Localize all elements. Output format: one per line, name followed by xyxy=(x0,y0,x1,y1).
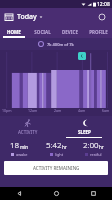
staticText: light xyxy=(55,152,64,157)
button[interactable]: Profile xyxy=(97,12,107,22)
staticText: ACTIVITY REMAINING xyxy=(33,165,80,171)
button[interactable]: Calendar xyxy=(5,12,43,22)
button[interactable]: 2:00 xyxy=(75,138,112,158)
staticText: 12:08 xyxy=(97,1,110,8)
staticText: PROFILE xyxy=(89,29,108,35)
button[interactable]: 18 xyxy=(0,138,38,158)
button[interactable]: Sleep marker xyxy=(78,52,86,60)
staticText: 4am xyxy=(78,108,86,113)
staticText: 7k 400m of 7k xyxy=(47,42,74,47)
staticText: min xyxy=(20,144,29,150)
button[interactable]: DEVICE xyxy=(56,25,84,38)
button[interactable]: Recents xyxy=(75,187,112,200)
staticText: restful xyxy=(90,152,102,157)
staticText: ACTIVITY xyxy=(18,129,38,135)
staticText: 10pm xyxy=(2,108,12,113)
staticText: awake xyxy=(16,152,28,157)
staticText: 6am xyxy=(102,108,110,113)
button[interactable]: 5:42 xyxy=(38,138,75,158)
staticText: 12am xyxy=(28,108,38,113)
button[interactable]: Back xyxy=(0,187,38,200)
button[interactable]: ACTIVITY xyxy=(0,116,56,138)
other: Calendar xyxy=(5,13,13,21)
staticText: SLEEP xyxy=(78,129,91,135)
button[interactable]: SOCIAL xyxy=(28,25,56,38)
button[interactable]: ACTIVITY REMAINING xyxy=(4,161,108,175)
button[interactable]: HOME xyxy=(0,25,28,38)
staticText: 2:00 xyxy=(83,139,99,150)
staticText: hr xyxy=(99,144,104,150)
staticText: DEVICE xyxy=(62,29,78,35)
button[interactable]: SLEEP xyxy=(56,116,112,138)
staticText: SOCIAL xyxy=(34,29,51,35)
button[interactable]: PROFILE xyxy=(84,25,112,38)
staticText: hr xyxy=(62,144,67,150)
staticText: Today xyxy=(17,12,37,22)
staticText: 2am xyxy=(54,108,62,113)
staticText: 5:42 xyxy=(46,139,62,150)
staticText: 18 xyxy=(10,139,20,150)
button[interactable]: Home xyxy=(38,187,75,200)
staticText: HOME xyxy=(7,29,21,35)
